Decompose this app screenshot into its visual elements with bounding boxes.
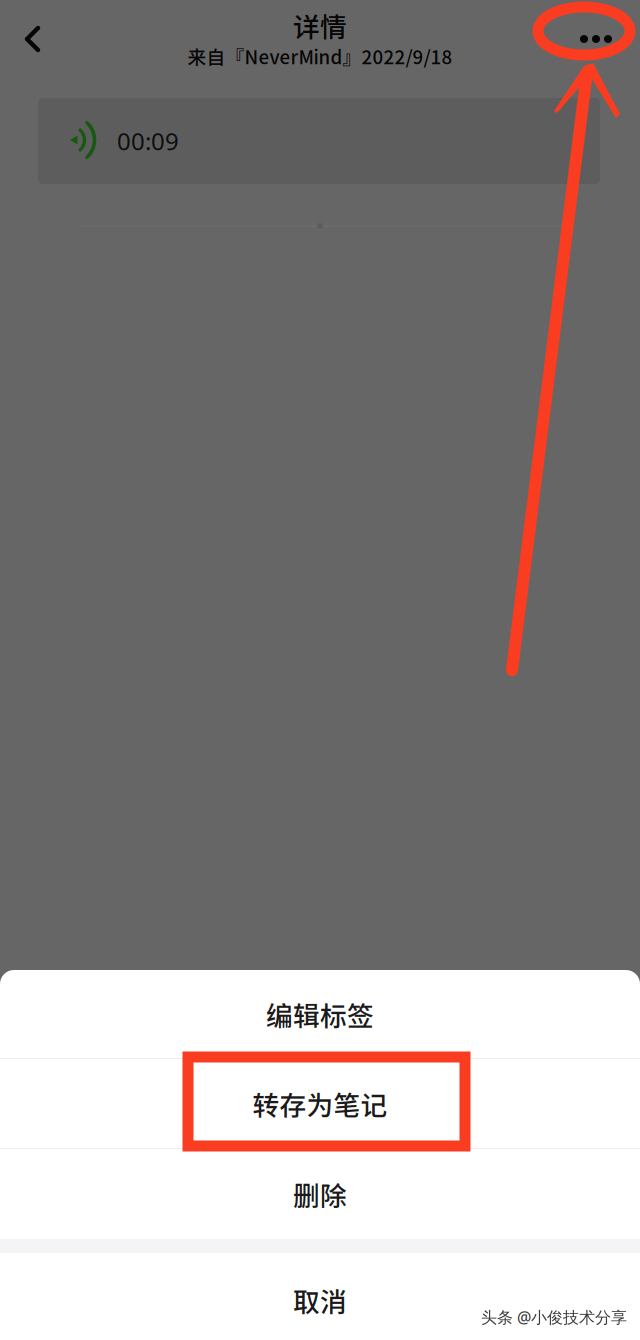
button[interactable]: 转存为笔记 [0, 1059, 640, 1148]
staticText: 取消 [293, 1281, 347, 1319]
staticText: 转存为笔记 [252, 1084, 387, 1123]
staticText: 00:09 [117, 125, 179, 157]
button[interactable]: More [561, 13, 631, 65]
staticText: 详情 [293, 6, 347, 45]
staticText: 删除 [293, 1175, 347, 1213]
staticText: 编辑标签 [266, 995, 374, 1033]
staticText: 头条 @小俊技术分享 [481, 1306, 627, 1328]
button[interactable]: 编辑标签 [0, 970, 640, 1058]
button[interactable]: Back [19, 18, 61, 60]
staticText: 来自『NeverMind』2022/9/18 [187, 43, 452, 70]
button[interactable]: 删除 [0, 1149, 640, 1239]
button[interactable]: 取消 [0, 1253, 640, 1340]
